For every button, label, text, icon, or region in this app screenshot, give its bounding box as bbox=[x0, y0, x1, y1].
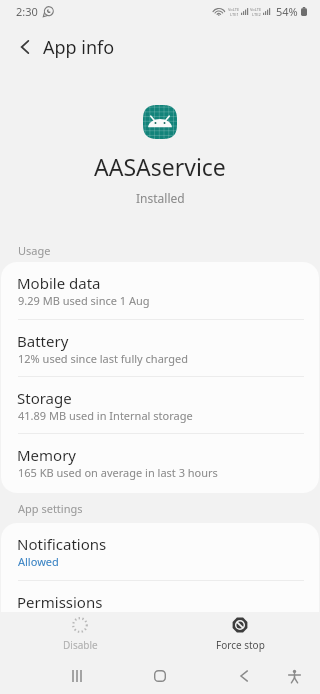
staticText: Allowed bbox=[18, 554, 59, 569]
staticText: Force stop bbox=[216, 638, 265, 652]
staticText: AASAservice bbox=[94, 151, 226, 182]
staticText: 2:30 bbox=[16, 4, 38, 19]
staticText: 12% used since last fully charged bbox=[18, 351, 188, 366]
button[interactable]: Disable bbox=[0, 611, 160, 655]
button[interactable]: Force stop bbox=[160, 611, 320, 655]
staticText: Notifications bbox=[17, 534, 107, 554]
staticText: 41.89 MB used in Internal storage bbox=[18, 408, 193, 423]
button[interactable]: Back bbox=[227, 659, 261, 693]
button[interactable]: Accessibility bbox=[277, 659, 311, 693]
staticText: Usage bbox=[18, 243, 51, 258]
button[interactable]: Storage bbox=[1, 377, 319, 434]
staticText: Battery bbox=[17, 331, 69, 351]
staticText: VoLTE bbox=[250, 7, 262, 12]
staticText: Storage bbox=[17, 388, 72, 408]
button[interactable]: Battery bbox=[1, 320, 319, 377]
button[interactable]: Notifications bbox=[1, 523, 319, 581]
staticText: Disable bbox=[63, 638, 98, 652]
staticText: Mobile data bbox=[17, 273, 101, 293]
button[interactable]: Home bbox=[143, 659, 177, 693]
staticText: 165 KB used on average in last 3 hours bbox=[18, 465, 218, 480]
button[interactable]: Navigate up bbox=[10, 32, 40, 62]
staticText: Permissions bbox=[17, 592, 103, 612]
staticText: LTE1 bbox=[230, 12, 239, 17]
button[interactable]: Memory bbox=[1, 434, 319, 493]
button[interactable]: Mobile data bbox=[1, 262, 319, 320]
button[interactable]: Recent apps bbox=[60, 659, 94, 693]
button[interactable]: Permissions bbox=[1, 581, 319, 611]
staticText: App info bbox=[43, 35, 115, 60]
staticText: LTE2 bbox=[252, 12, 261, 17]
staticText: 9.29 MB used since 1 Aug bbox=[18, 293, 150, 308]
staticText: 54% bbox=[276, 4, 298, 19]
staticText: App settings bbox=[18, 501, 83, 516]
staticText: VoLTE bbox=[228, 7, 240, 12]
staticText: Memory bbox=[17, 445, 77, 465]
staticText: Installed bbox=[136, 190, 185, 206]
